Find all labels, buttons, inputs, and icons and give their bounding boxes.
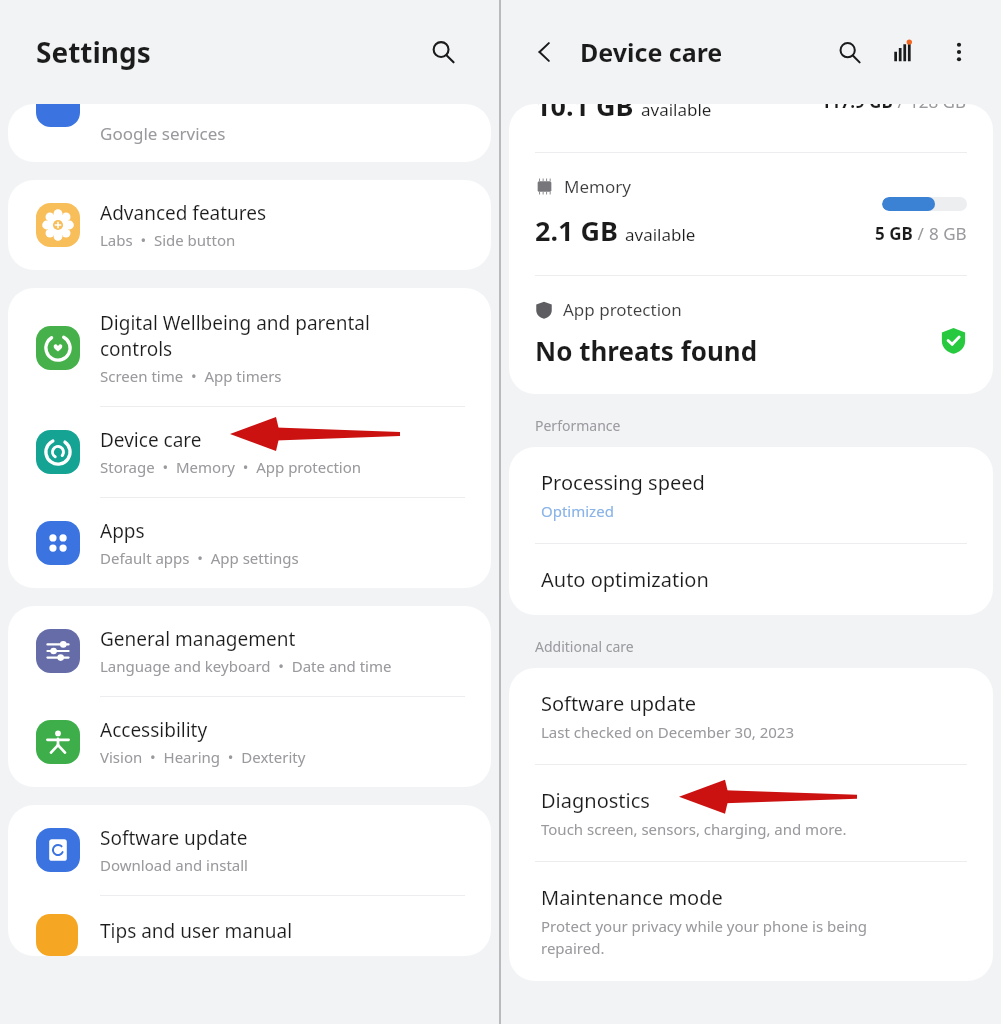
staticText: Auto optimization [541, 566, 709, 593]
staticText: Memory [564, 175, 631, 198]
button[interactable]: Usage statistics [881, 28, 929, 76]
staticText: Labs • Side button [100, 230, 236, 250]
button[interactable]: Software update [8, 805, 491, 895]
staticText: 128 GB [909, 104, 967, 113]
staticText: available [641, 104, 712, 121]
staticText: Software update [100, 825, 248, 851]
button[interactable]: Device care [8, 407, 491, 497]
button[interactable]: General management [8, 606, 491, 696]
button[interactable]: Accessibility [8, 697, 491, 787]
button[interactable]: 10.1 GB [509, 104, 993, 152]
staticText: Device care [580, 35, 723, 69]
staticText: General management [100, 626, 296, 652]
staticText: Apps [100, 518, 145, 544]
button[interactable]: Digital Wellbeing and parental controls [8, 288, 491, 406]
staticText: Touch screen, sensors, charging, and mor… [541, 819, 847, 839]
staticText: Performance [535, 416, 621, 435]
staticText: Accessibility [100, 717, 208, 743]
staticText: Diagnostics [541, 787, 650, 814]
staticText: 117.9 GB [821, 104, 893, 113]
button[interactable]: Maintenance mode [509, 862, 993, 981]
staticText: 10.1 GB [535, 104, 634, 124]
staticText: Maintenance mode [541, 884, 723, 911]
button[interactable]: Search [419, 28, 467, 76]
staticText: / [913, 222, 929, 245]
staticText: Download and install [100, 855, 248, 875]
staticText: Device care [100, 427, 202, 453]
staticText: Last checked on December 30, 2023 [541, 722, 795, 742]
staticText: Protect your privacy while your phone is… [541, 916, 868, 959]
button[interactable]: Apps [8, 498, 491, 588]
staticText: Optimized [541, 501, 614, 521]
button[interactable]: Diagnostics [509, 765, 993, 861]
button[interactable]: Back [521, 28, 569, 76]
staticText: Tips and user manual [100, 918, 293, 944]
button[interactable]: Auto optimization [509, 544, 993, 615]
staticText: Storage • Memory • App protection [100, 457, 362, 477]
button[interactable]: Advanced features [8, 180, 491, 270]
staticText: Language and keyboard • Date and time [100, 656, 392, 676]
button[interactable]: Google services [8, 104, 491, 162]
button[interactable]: Processing speed [509, 447, 993, 543]
staticText: available [625, 223, 696, 246]
button[interactable]: Search [825, 28, 873, 76]
staticText: / [893, 104, 909, 113]
staticText: 8 GB [929, 222, 967, 245]
staticText: Processing speed [541, 469, 705, 496]
staticText: Vision • Hearing • Dexterity [100, 747, 306, 767]
staticText: Additional care [535, 637, 634, 656]
staticText: Screen time • App timers [100, 366, 282, 386]
staticText: Digital Wellbeing and parental controls [100, 310, 370, 362]
button[interactable]: Software update [509, 668, 993, 764]
staticText: Google services [100, 122, 226, 145]
button[interactable]: More options [935, 28, 983, 76]
staticText: App protection [563, 298, 682, 321]
staticText: Software update [541, 690, 697, 717]
staticText: 5 GB [875, 222, 913, 245]
staticText: Advanced features [100, 200, 267, 226]
button[interactable]: Memory [509, 153, 993, 275]
staticText: 2.1 GB [535, 212, 618, 249]
staticText: Settings [36, 33, 151, 71]
staticText: No threats found [535, 333, 758, 368]
staticText: Default apps • App settings [100, 548, 299, 568]
button[interactable]: App protection [509, 276, 993, 394]
